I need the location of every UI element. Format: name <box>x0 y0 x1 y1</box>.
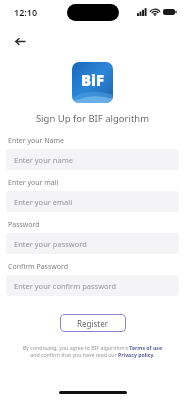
staticText: BiF <box>81 70 105 90</box>
button[interactable]: Enter your password <box>6 233 179 254</box>
staticText: Enter your name <box>14 155 73 165</box>
staticText: Enter your Name <box>8 136 64 146</box>
staticText: Enter your password <box>14 239 87 249</box>
staticText: Enter your email <box>14 197 73 207</box>
staticText: Password <box>8 220 40 230</box>
staticText: Confirm Password <box>8 262 69 272</box>
staticText: Sign Up for BIF algorithm <box>0 112 185 125</box>
staticText: Register <box>77 318 109 329</box>
staticText: Enter your mail <box>8 178 59 188</box>
button[interactable]: By continuing, you agree to BIF algorith… <box>22 344 163 359</box>
staticText: 12:10 <box>14 6 38 18</box>
button[interactable]: Enter your name <box>6 149 179 170</box>
button[interactable]: Enter your email <box>6 191 179 212</box>
button[interactable]: Enter your confirm password <box>6 275 179 296</box>
staticText: By continuing, you agree to BIF algorith… <box>22 344 163 359</box>
button[interactable]: Register <box>60 314 126 332</box>
button[interactable]: Back <box>8 29 32 53</box>
staticText: Enter your confirm password <box>14 281 117 291</box>
